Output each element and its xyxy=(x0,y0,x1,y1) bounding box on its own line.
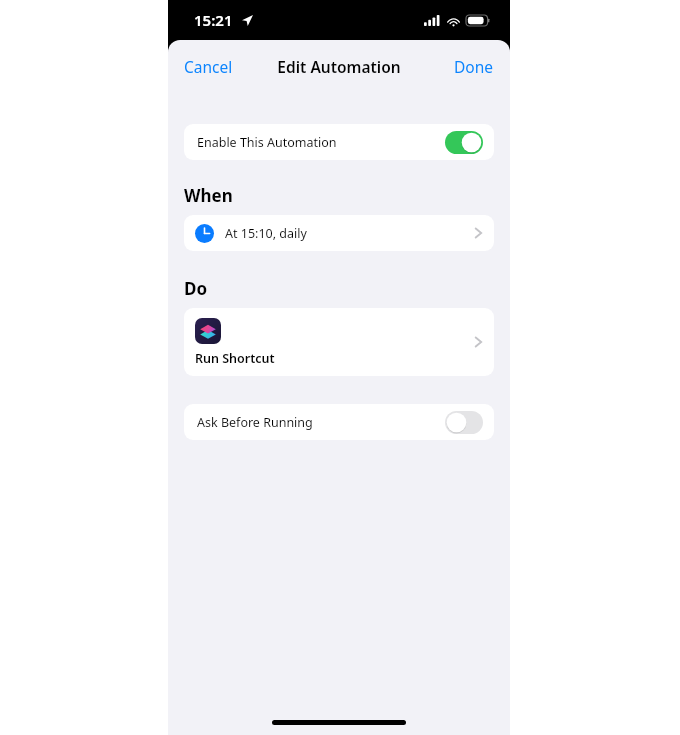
staticText: Cancel xyxy=(184,56,233,77)
staticText: At 15:10, daily xyxy=(225,225,307,242)
staticText: Run Shortcut xyxy=(195,350,275,367)
staticText: Do xyxy=(184,277,208,300)
staticText: Done xyxy=(454,56,494,77)
button[interactable]: Enable This Automation xyxy=(184,124,494,160)
staticText: When xyxy=(184,184,233,207)
button[interactable]: Ask Before Running xyxy=(184,404,494,440)
staticText: Enable This Automation xyxy=(197,134,337,151)
button[interactable]: Shortcuts app xyxy=(184,308,494,376)
button[interactable]: Done xyxy=(438,48,510,85)
staticText: Edit Automation xyxy=(277,56,401,77)
staticText: Ask Before Running xyxy=(197,414,313,431)
other: Shortcuts app xyxy=(195,318,221,344)
button[interactable]: At 15:10, daily xyxy=(184,215,494,251)
button[interactable]: Cancel xyxy=(168,48,249,85)
staticText: 15:21 xyxy=(194,10,233,30)
